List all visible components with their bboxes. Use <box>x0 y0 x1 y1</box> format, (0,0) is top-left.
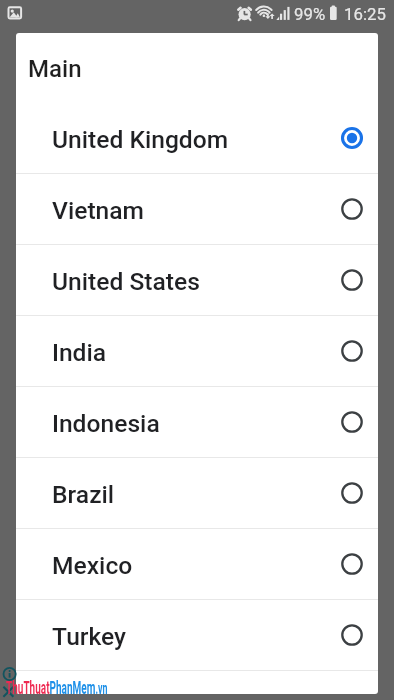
staticText: ThuThuatPhanMem.vn <box>6 677 108 698</box>
button[interactable]: Indonesia <box>16 387 378 457</box>
staticText: Indonesia <box>52 409 338 438</box>
staticText: India <box>52 338 338 367</box>
button[interactable]: Brazil <box>16 458 378 528</box>
button[interactable]: United States <box>16 245 378 315</box>
button[interactable]: Mexico <box>16 529 378 599</box>
staticText: Mexico <box>52 551 338 580</box>
staticText: 99% <box>294 4 326 24</box>
staticText: 16:25 <box>344 4 386 24</box>
staticText: Vietnam <box>52 196 338 225</box>
staticText: Brazil <box>52 480 338 509</box>
button[interactable]: Info <box>2 665 20 683</box>
staticText: Turkey <box>52 622 338 651</box>
staticText: United Kingdom <box>52 125 338 154</box>
button[interactable]: United Kingdom <box>16 103 378 173</box>
button[interactable]: Close <box>2 684 20 700</box>
staticText: United States <box>52 267 338 296</box>
staticText: Main <box>28 55 82 83</box>
button[interactable]: Turkey <box>16 600 378 670</box>
button[interactable]: India <box>16 316 378 386</box>
button[interactable]: Vietnam <box>16 174 378 244</box>
